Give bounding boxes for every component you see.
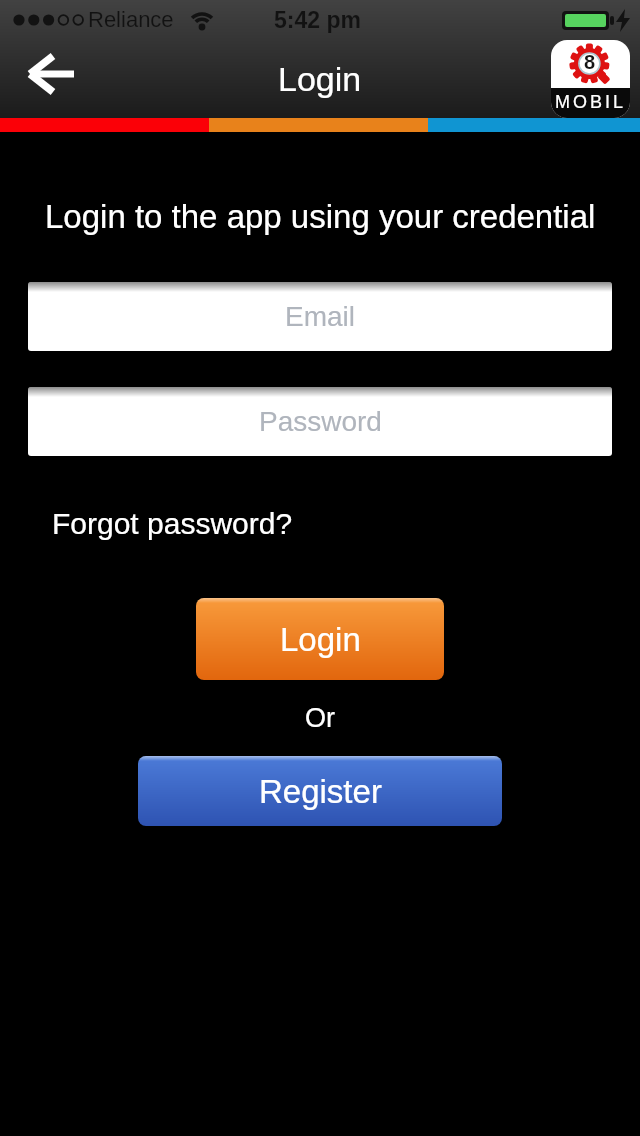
staticText: Or	[305, 703, 335, 733]
button[interactable]: Password	[28, 387, 612, 456]
button[interactable]: Login	[196, 598, 444, 680]
staticText: Login	[278, 60, 362, 98]
button[interactable]	[22, 46, 82, 102]
staticText: Reliance	[88, 7, 174, 32]
staticText: Password	[259, 406, 382, 437]
button[interactable]: Forgot password?	[52, 507, 293, 541]
staticText: 8	[584, 51, 596, 73]
staticText: 5:42 pm	[274, 7, 361, 33]
staticText: Login	[280, 621, 361, 658]
staticText: Login to the app using your credential	[45, 198, 596, 235]
staticText: Email	[285, 301, 356, 332]
staticText: MOBIL	[555, 92, 627, 112]
button[interactable]: Register	[138, 756, 502, 826]
staticText: Register	[259, 773, 382, 810]
button[interactable]: Email	[28, 282, 612, 351]
